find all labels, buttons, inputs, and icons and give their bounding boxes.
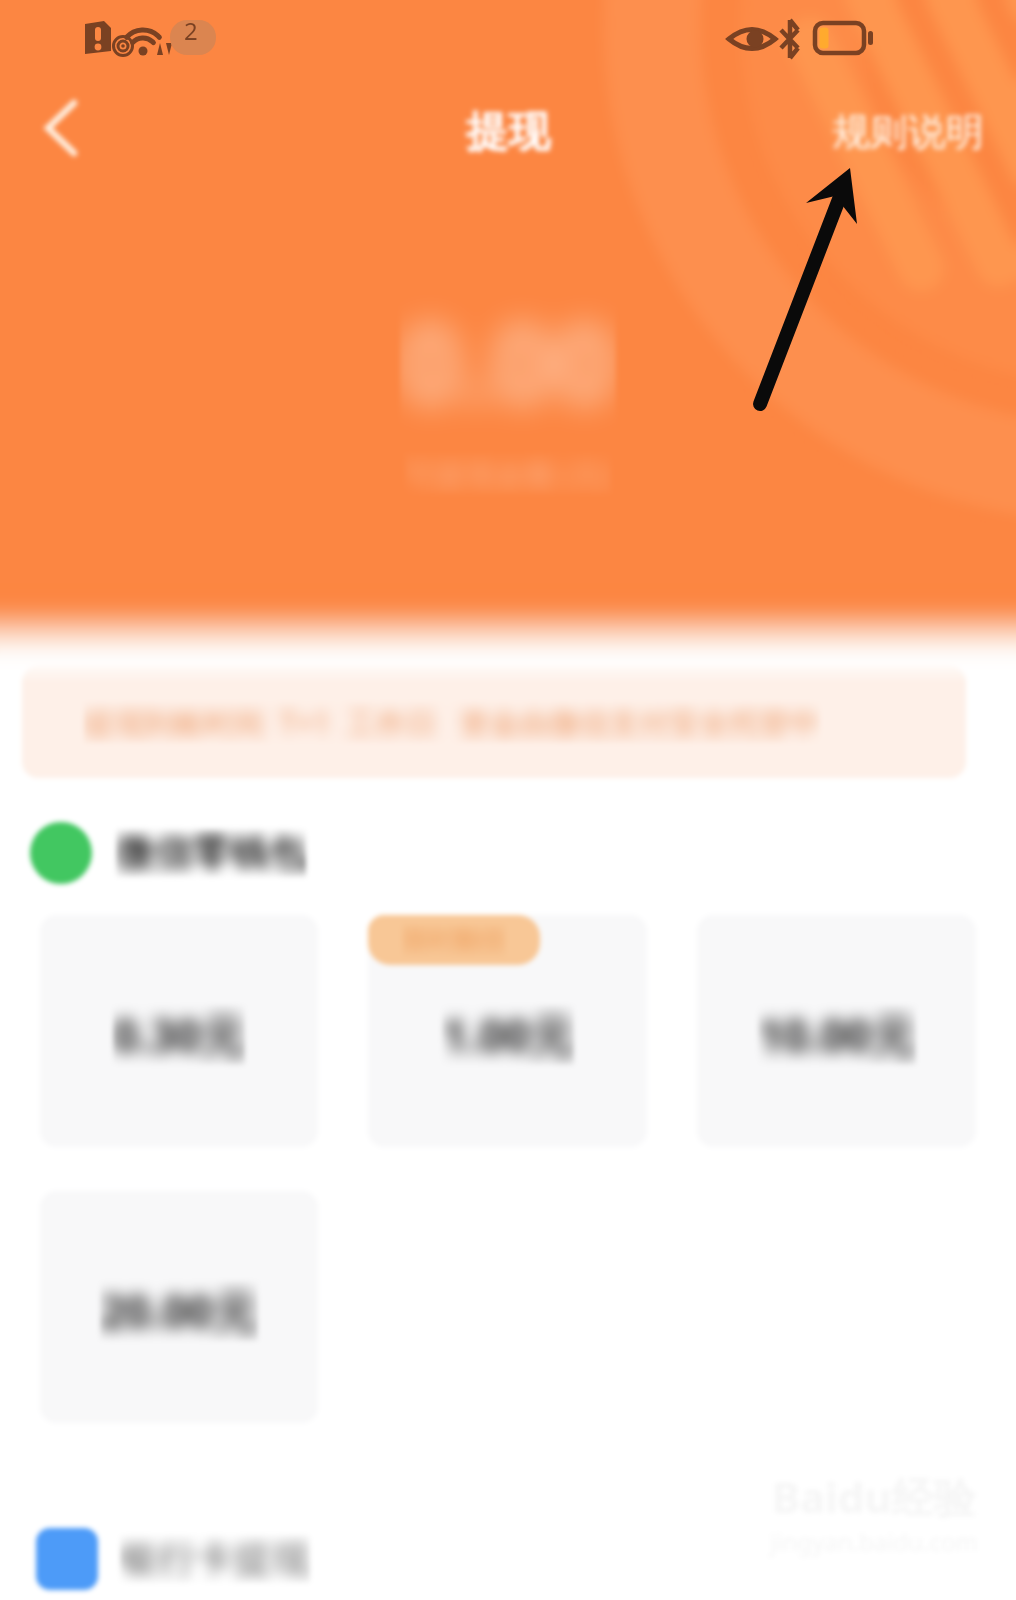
staticText: 规则说明 bbox=[832, 108, 984, 156]
button[interactable]: 20.00元 bbox=[40, 1191, 318, 1423]
staticText: 微信零钱包 bbox=[116, 829, 306, 877]
staticText: 可提现金额 (元) bbox=[405, 453, 611, 494]
button[interactable]: 0.30元 bbox=[40, 915, 318, 1147]
staticText: 2 bbox=[184, 14, 198, 47]
staticText: 10.00元 bbox=[758, 1005, 916, 1065]
button[interactable]: 微信零钱包 bbox=[30, 822, 1016, 884]
staticText: 银行卡提现 bbox=[120, 1535, 310, 1583]
button[interactable]: 规则说明 bbox=[832, 108, 984, 156]
staticText: 限时翻倍 bbox=[402, 924, 506, 957]
button[interactable]: 提现到账时间 T+1 工作日 资金由微信支付安全托管中 bbox=[22, 666, 966, 778]
staticText: 0.30元 bbox=[113, 1005, 245, 1065]
staticText: 提现 bbox=[466, 106, 550, 159]
button[interactable]: 银行卡提现 bbox=[36, 1528, 310, 1590]
staticText: 提现到账时间 T+1 工作日 资金由微信支付安全托管中 bbox=[84, 702, 820, 743]
button[interactable]: 10.00元 bbox=[697, 915, 976, 1147]
button[interactable]: 1.00元 bbox=[368, 915, 647, 1147]
staticText: 20.00元 bbox=[100, 1281, 258, 1341]
button[interactable]: Back bbox=[26, 93, 96, 163]
staticText: 0.00 bbox=[400, 288, 616, 435]
staticText: 1.00元 bbox=[442, 1005, 574, 1065]
